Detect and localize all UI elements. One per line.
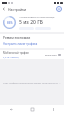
button[interactable]: Help [54, 5, 64, 13]
button[interactable]: Home [27, 105, 37, 114]
button[interactable]: Back [6, 105, 16, 114]
staticText: Настроить лимит трафика [3, 42, 38, 46]
staticText: Мобильный трафик [3, 51, 29, 55]
staticText: Режим экономии [3, 36, 31, 40]
button[interactable]: Режим экономии [0, 34, 64, 48]
button[interactable]: Recents [48, 105, 58, 114]
button[interactable]: Мобильный трафик [0, 50, 64, 59]
staticText: Использовано в этом месяце [19, 15, 55, 18]
button[interactable]: 86% [0, 13, 64, 32]
staticText: Настройки [8, 7, 54, 12]
button[interactable]: Back [0, 5, 8, 13]
staticText: 86% [7, 21, 13, 25]
staticText: Включено [45, 53, 57, 56]
staticText: Учёт трафика оператором может отличаться… [3, 81, 61, 84]
staticText: 5 из 20 ГБ [19, 19, 43, 26]
staticText: 4,3 ГБ / месяц [3, 56, 19, 59]
